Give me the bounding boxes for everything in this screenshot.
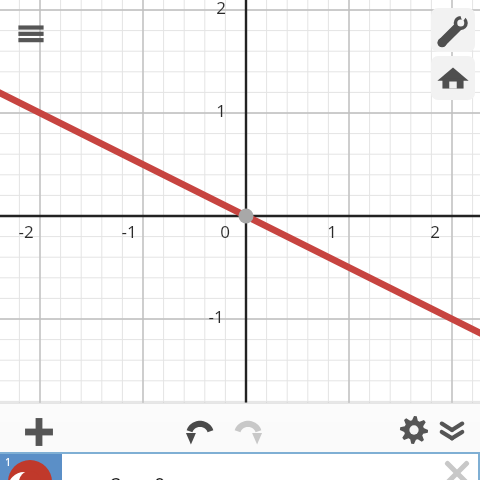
- staticText: 2: [216, 0, 226, 19]
- button[interactable]: Graph settings: [398, 414, 430, 446]
- button[interactable]: 1: [0, 452, 480, 480]
- staticText: 1: [327, 220, 337, 243]
- staticText: -2: [18, 220, 34, 243]
- button[interactable]: Home: [431, 56, 475, 100]
- staticText: 2: [430, 220, 440, 243]
- staticText: -1: [121, 220, 137, 243]
- button[interactable]: Undo: [182, 414, 218, 450]
- staticText: -1: [208, 305, 224, 328]
- button[interactable]: Menu: [10, 12, 52, 54]
- button[interactable]: Redo: [230, 414, 266, 450]
- staticText: 1: [5, 454, 12, 469]
- button[interactable]: Delete expression: [440, 456, 474, 480]
- staticText: x + 2y = 0: [78, 471, 166, 480]
- staticText: 1: [216, 99, 226, 122]
- button[interactable]: Add expression: [22, 415, 56, 449]
- staticText: 0: [220, 220, 230, 243]
- button[interactable]: Collapse: [436, 414, 468, 446]
- button[interactable]: Settings: [431, 8, 475, 52]
